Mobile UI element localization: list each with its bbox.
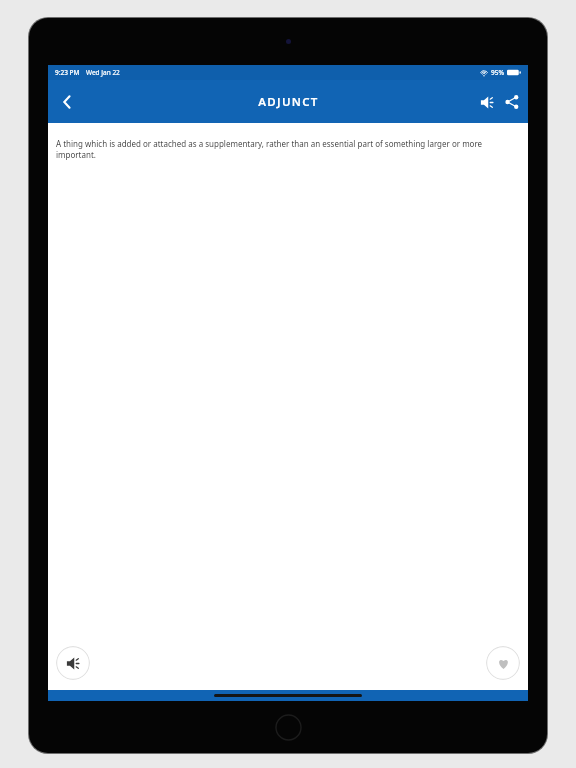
button[interactable]: Back xyxy=(50,85,84,119)
staticText: A thing which is added or attached as a … xyxy=(56,138,520,161)
staticText: Wed Jan 22 xyxy=(86,68,120,77)
button[interactable]: Pronounce xyxy=(475,90,499,114)
staticText: ADJUNCT xyxy=(258,94,319,110)
button[interactable]: Play pronunciation xyxy=(56,646,90,680)
staticText: 9:23 PM xyxy=(55,68,80,77)
button[interactable]: Share xyxy=(500,90,524,114)
button[interactable]: Add to favorites xyxy=(486,646,520,680)
staticText: 95% xyxy=(491,68,504,77)
